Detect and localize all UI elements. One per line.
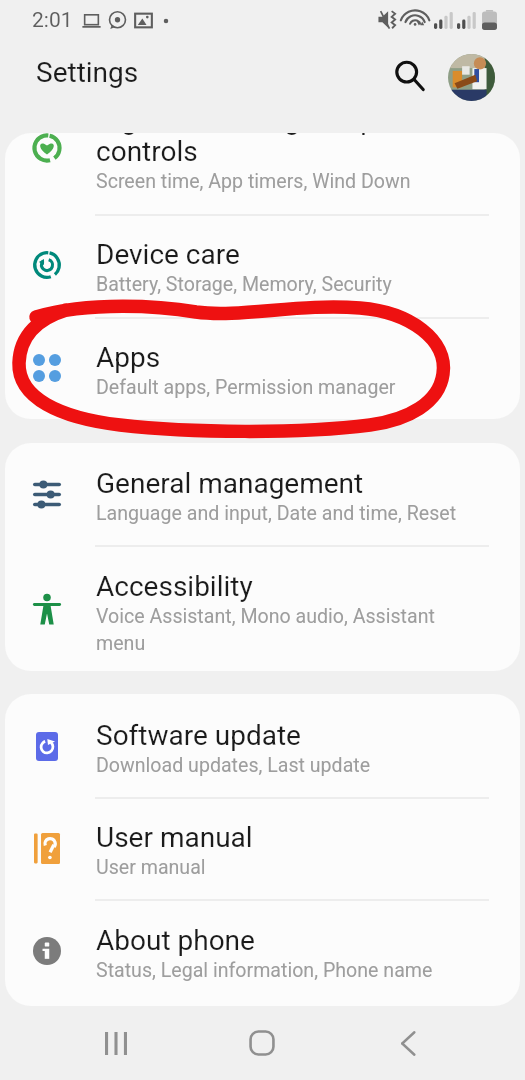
staticText: Battery, Storage, Memory, Security (96, 273, 392, 296)
staticText: Status, Legal information, Phone name (96, 959, 433, 982)
button[interactable]: Accessibility (96, 570, 520, 655)
button[interactable]: Account profile (448, 54, 495, 101)
staticText: Voice Assistant, Mono audio, Assistant m… (96, 605, 435, 655)
staticText: User manual (96, 821, 253, 854)
button[interactable]: Apps (96, 341, 520, 399)
staticText: User manual (96, 856, 206, 879)
staticText: Apps (96, 341, 161, 374)
staticText: About phone (96, 924, 255, 957)
button[interactable]: General management (96, 467, 520, 525)
staticText: Download updates, Last update (96, 754, 371, 777)
staticText: Settings (36, 56, 139, 89)
button[interactable]: About phone (96, 924, 520, 982)
button[interactable]: Software update (96, 719, 520, 777)
staticText: Default apps, Permission manager (96, 376, 396, 399)
staticText: Device care (96, 238, 240, 271)
staticText: General management (96, 467, 364, 500)
staticText: Software update (96, 719, 301, 752)
staticText: Language and input, Date and time, Reset (96, 502, 457, 525)
button[interactable]: Search (384, 50, 436, 102)
staticText: Screen time, App timers, Wind Down (96, 170, 411, 193)
button[interactable]: Back (355, 1014, 461, 1072)
button[interactable]: Digital wellbeing and parental controls (96, 133, 520, 193)
button[interactable]: Home (209, 1014, 315, 1072)
staticText: Digital wellbeing and parental controls (96, 133, 462, 168)
staticText: Accessibility (96, 570, 253, 603)
staticText: 2:01 (32, 8, 73, 33)
button[interactable]: Device care (96, 238, 520, 296)
button[interactable]: Recent apps (63, 1014, 169, 1072)
button[interactable]: User manual (96, 821, 520, 879)
